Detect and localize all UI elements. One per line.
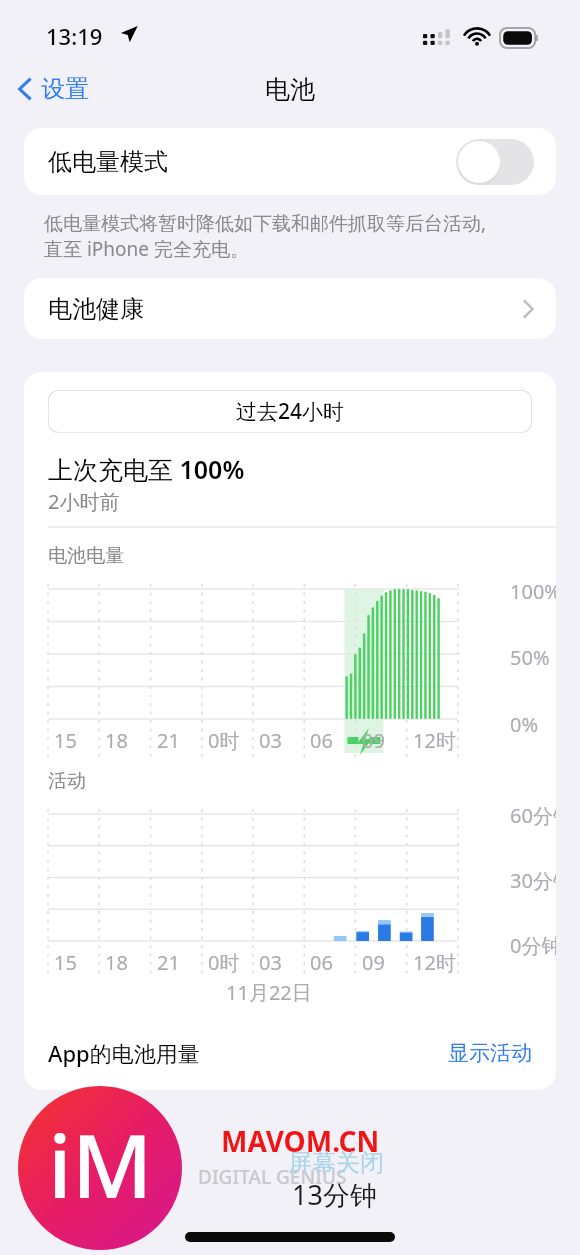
- staticText: 0分钟: [510, 932, 556, 959]
- staticText: 低电量模式将暂时降低如下载和邮件抓取等后台活动,: [44, 210, 487, 236]
- staticText: 21: [157, 727, 180, 754]
- staticText: 电池健康: [48, 294, 144, 324]
- staticText: 21: [157, 949, 180, 976]
- staticText: 过去24小时: [236, 397, 345, 426]
- staticText: 12时: [413, 727, 456, 754]
- staticText: 18: [105, 727, 128, 754]
- button[interactable]: 电池健康: [24, 278, 556, 339]
- staticText: 显示活动: [448, 1040, 532, 1066]
- staticText: 0时: [208, 727, 240, 754]
- staticText: 06: [310, 727, 333, 754]
- staticText: 100%: [510, 578, 556, 605]
- staticText: 60分钟: [510, 802, 556, 829]
- staticText: 0时: [208, 949, 240, 976]
- staticText: iM: [48, 1104, 153, 1224]
- staticText: 0%: [510, 711, 539, 738]
- staticText: 03: [259, 949, 282, 976]
- staticText: 09: [362, 727, 385, 754]
- staticText: DIGITAL GENIUS: [198, 1164, 347, 1190]
- staticText: 11月22日: [226, 979, 312, 1006]
- staticText: 电池: [265, 74, 315, 105]
- staticText: 13:19: [46, 21, 103, 51]
- staticText: App的电池用量: [48, 1038, 200, 1068]
- staticText: 12时: [413, 949, 456, 976]
- staticText: 13分钟: [292, 1176, 377, 1213]
- staticText: 低电量模式: [48, 147, 168, 177]
- staticText: 15: [54, 949, 77, 976]
- button[interactable]: 设置: [10, 70, 97, 108]
- staticText: 2小时前: [48, 488, 120, 515]
- staticText: 03: [259, 727, 282, 754]
- staticText: 屏幕关闭: [288, 1148, 384, 1178]
- staticText: 18: [105, 949, 128, 976]
- staticText: 50%: [510, 644, 550, 671]
- button[interactable]: 低电量模式: [24, 128, 556, 195]
- staticText: MAVOM.CN: [221, 1122, 380, 1160]
- staticText: 上次充电至 100%: [48, 452, 245, 486]
- button[interactable]: 低电量模式开关: [456, 139, 534, 185]
- staticText: 09: [362, 949, 385, 976]
- staticText: 直至 iPhone 完全充电。: [44, 236, 249, 262]
- staticText: 电池电量: [48, 544, 124, 568]
- staticText: 活动: [48, 769, 86, 793]
- button[interactable]: 过去24小时: [48, 390, 532, 433]
- button[interactable]: 显示活动: [448, 1040, 532, 1066]
- staticText: 30分钟: [510, 867, 556, 894]
- staticText: 06: [310, 949, 333, 976]
- staticText: 设置: [41, 74, 89, 104]
- staticText: 15: [54, 727, 77, 754]
